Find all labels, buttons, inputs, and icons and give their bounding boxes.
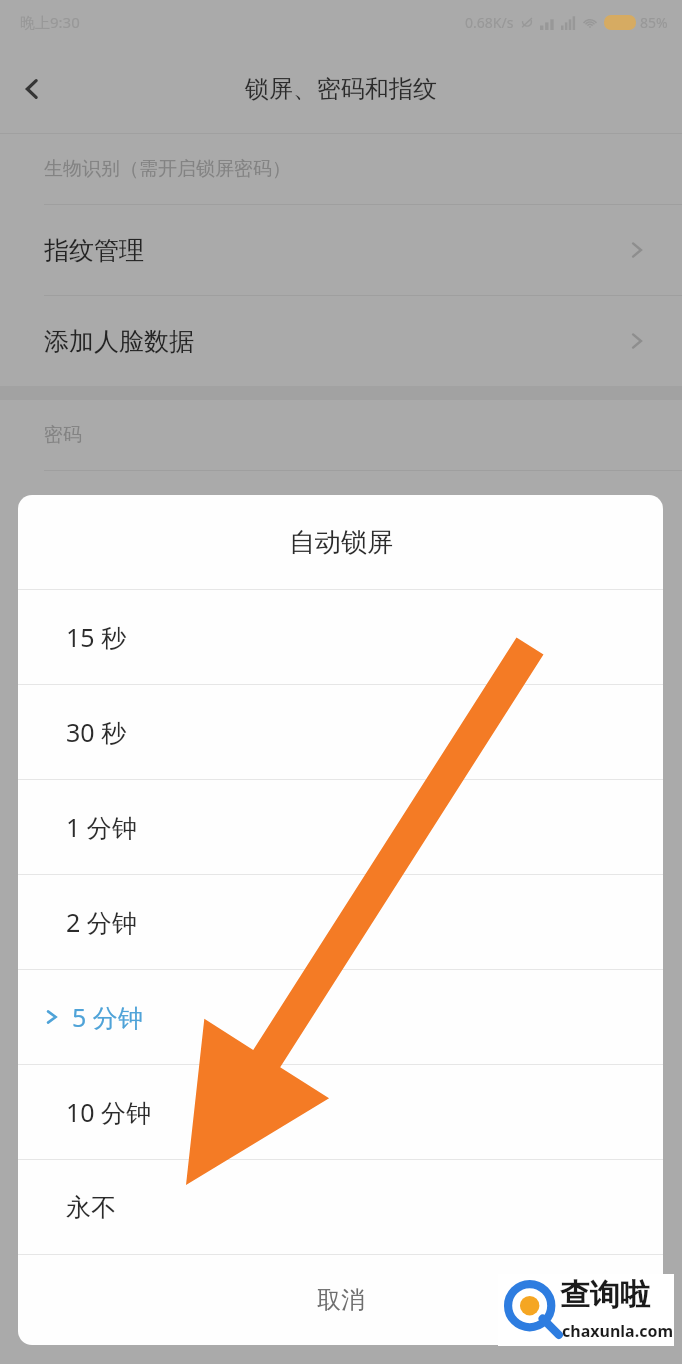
button[interactable]: 2 分钟 (18, 875, 663, 969)
button[interactable]: 锁屏密码 (0, 471, 682, 561)
button[interactable]: Back (0, 57, 64, 121)
button[interactable]: 添加人脸数据 (0, 296, 682, 386)
staticText: 锁屏、密码和指纹 (245, 74, 437, 104)
button[interactable]: 5 分钟 (18, 970, 663, 1064)
staticText: 5 分钟 (72, 1000, 143, 1034)
button[interactable]: 取消 (18, 1255, 663, 1345)
staticText: 2 分钟 (66, 905, 137, 939)
staticText: 晚上9:30 (20, 12, 80, 32)
staticText: 取消 (317, 1285, 365, 1315)
button[interactable]: 10 分钟 (18, 1065, 663, 1159)
staticText: 30 秒 (66, 715, 127, 749)
button[interactable]: 指纹管理 (0, 205, 682, 295)
staticText: 1 分钟 (66, 810, 137, 844)
button[interactable]: 永不 (18, 1160, 663, 1254)
button[interactable]: 1 分钟 (18, 780, 663, 874)
staticText: 自动锁屏 (289, 526, 393, 559)
button[interactable]: 30 秒 (18, 685, 663, 779)
staticText: 15 秒 (66, 620, 127, 654)
staticText: 10 分钟 (66, 1095, 152, 1129)
staticText: 85% (640, 13, 668, 32)
staticText: 密码 (44, 423, 82, 447)
staticText: 查询啦 (560, 1276, 650, 1314)
staticText: 0.68K/s (465, 13, 514, 32)
staticText: 生物识别（需开启锁屏密码） (44, 157, 291, 181)
staticText: 添加人脸数据 (44, 326, 194, 357)
staticText: chaxunla.com (562, 1320, 673, 1342)
button[interactable]: 15 秒 (18, 590, 663, 684)
staticText: 指纹管理 (44, 235, 144, 266)
staticText: 永不 (66, 1192, 116, 1223)
